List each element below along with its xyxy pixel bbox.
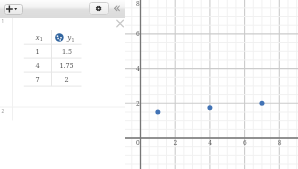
button[interactable]: Settings [89, 2, 109, 15]
button[interactable]: Collapse panel [111, 2, 123, 15]
button[interactable]: Close [114, 18, 126, 30]
button[interactable]: Add object [4, 4, 23, 15]
